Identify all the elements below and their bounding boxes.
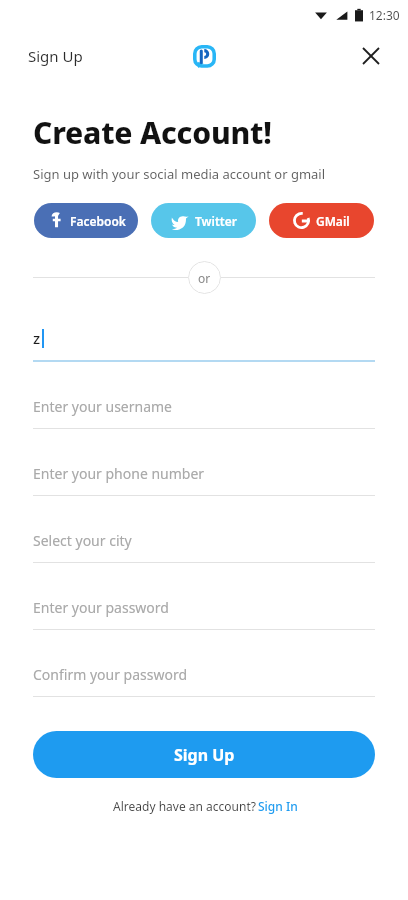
- button[interactable]: Twitter: [151, 203, 256, 238]
- staticText: Sign up with your social media account o…: [33, 165, 326, 183]
- staticText: Sign Up: [174, 744, 235, 766]
- staticText: Sign In: [258, 798, 298, 814]
- staticText: Create Account!: [33, 112, 272, 153]
- staticText: Confirm your password: [33, 665, 188, 684]
- staticText: Already have an account?: [111, 798, 258, 814]
- staticText: Facebook: [70, 213, 126, 229]
- staticText: Enter your password: [33, 598, 169, 617]
- button[interactable]: Facebook: [34, 203, 138, 238]
- button[interactable]: Enter your password: [33, 585, 375, 629]
- button[interactable]: Sign Up: [22, 40, 89, 72]
- button[interactable]: Select your city: [33, 518, 375, 562]
- staticText: 12:30: [369, 7, 400, 23]
- button[interactable]: Enter your phone number: [33, 451, 375, 495]
- button[interactable]: Sign In: [258, 798, 298, 814]
- staticText: GMail: [316, 213, 350, 229]
- button[interactable]: z: [33, 316, 375, 360]
- button[interactable]: GMail: [269, 203, 374, 238]
- button[interactable]: Close: [354, 39, 388, 73]
- staticText: or: [198, 270, 211, 286]
- staticText: Enter your phone number: [33, 464, 205, 483]
- staticText: Twitter: [195, 213, 237, 229]
- staticText: z: [33, 328, 41, 348]
- staticText: Enter your username: [33, 397, 173, 416]
- button[interactable]: Confirm your password: [33, 652, 375, 696]
- button[interactable]: App logo: [189, 41, 219, 71]
- button[interactable]: Enter your username: [33, 384, 375, 428]
- button[interactable]: Sign Up: [33, 731, 375, 778]
- staticText: Select your city: [33, 531, 132, 550]
